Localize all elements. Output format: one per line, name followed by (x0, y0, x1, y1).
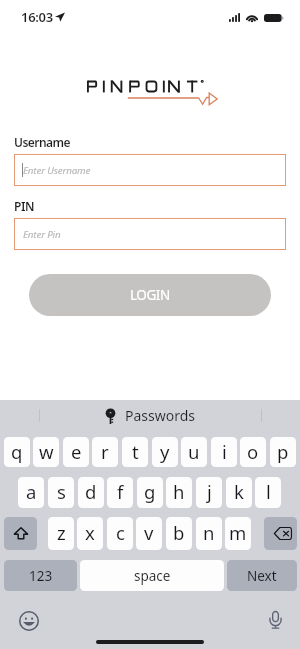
button[interactable]: Passwords (105, 400, 196, 430)
staticText: space (134, 567, 171, 585)
button[interactable]: c (107, 517, 133, 550)
staticText: Enter Username (23, 164, 91, 177)
button[interactable]: space (80, 560, 224, 591)
staticText: a (26, 479, 37, 504)
button[interactable]: z (48, 517, 74, 550)
staticText: f (117, 479, 124, 504)
button[interactable]: Enter Username (14, 154, 286, 186)
staticText: 16:03 (21, 8, 53, 26)
staticText: j (207, 479, 212, 504)
staticText: n (203, 520, 215, 545)
button[interactable]: n (196, 517, 222, 550)
button[interactable]: v (136, 517, 162, 550)
button[interactable]: Backspace (264, 517, 297, 550)
button[interactable]: i (211, 437, 237, 467)
button[interactable]: Next (227, 560, 297, 591)
button[interactable]: Enter Pin (14, 218, 286, 250)
button[interactable]: u (181, 437, 207, 467)
button[interactable]: w (33, 437, 59, 467)
staticText: h (173, 479, 185, 504)
button[interactable]: e (63, 437, 89, 467)
staticText: v (144, 520, 154, 545)
staticText: c (116, 520, 125, 545)
button[interactable]: y (152, 437, 178, 467)
staticText: d (85, 479, 97, 504)
staticText: i (222, 439, 227, 464)
button[interactable]: q (4, 437, 30, 467)
button[interactable]: d (78, 477, 104, 508)
staticText: 123 (29, 567, 53, 585)
staticText: z (57, 520, 66, 545)
button[interactable]: l (255, 477, 281, 508)
staticText: r (101, 439, 109, 464)
button[interactable]: LOGIN (29, 274, 271, 316)
button[interactable]: m (225, 517, 251, 550)
staticText: b (173, 520, 185, 545)
button[interactable]: Emoji (18, 610, 39, 631)
button[interactable]: k (226, 477, 252, 508)
staticText: g (144, 479, 156, 504)
button[interactable]: s (48, 477, 74, 508)
button[interactable]: Shift (4, 517, 37, 550)
button[interactable]: o (240, 437, 266, 467)
button[interactable]: f (107, 477, 133, 508)
staticText: Enter Pin (23, 228, 61, 241)
staticText: w (39, 439, 54, 464)
button[interactable]: r (92, 437, 118, 467)
staticText: e (71, 439, 82, 464)
staticText: Username (14, 134, 70, 150)
staticText: Passwords (125, 406, 196, 425)
staticText: k (234, 479, 244, 504)
staticText: p (277, 439, 289, 464)
button[interactable]: g (137, 477, 163, 508)
button[interactable]: h (166, 477, 192, 508)
staticText: m (229, 520, 247, 545)
button[interactable]: a (18, 477, 44, 508)
staticText: Next (247, 567, 277, 585)
button[interactable]: x (77, 517, 103, 550)
button[interactable]: b (166, 517, 192, 550)
staticText: y (160, 439, 170, 464)
staticText: s (57, 479, 66, 504)
button[interactable]: 123 (4, 560, 77, 591)
staticText: LOGIN (130, 286, 170, 304)
staticText: PIN (14, 198, 35, 214)
staticText: l (266, 479, 271, 504)
button[interactable]: j (196, 477, 222, 508)
staticText: t (132, 439, 139, 464)
staticText: x (85, 520, 95, 545)
button[interactable]: t (122, 437, 148, 467)
staticText: q (11, 439, 23, 464)
button[interactable]: p (270, 437, 296, 467)
button[interactable]: Dictate (265, 610, 285, 630)
staticText: o (247, 439, 259, 464)
staticText: u (188, 439, 200, 464)
